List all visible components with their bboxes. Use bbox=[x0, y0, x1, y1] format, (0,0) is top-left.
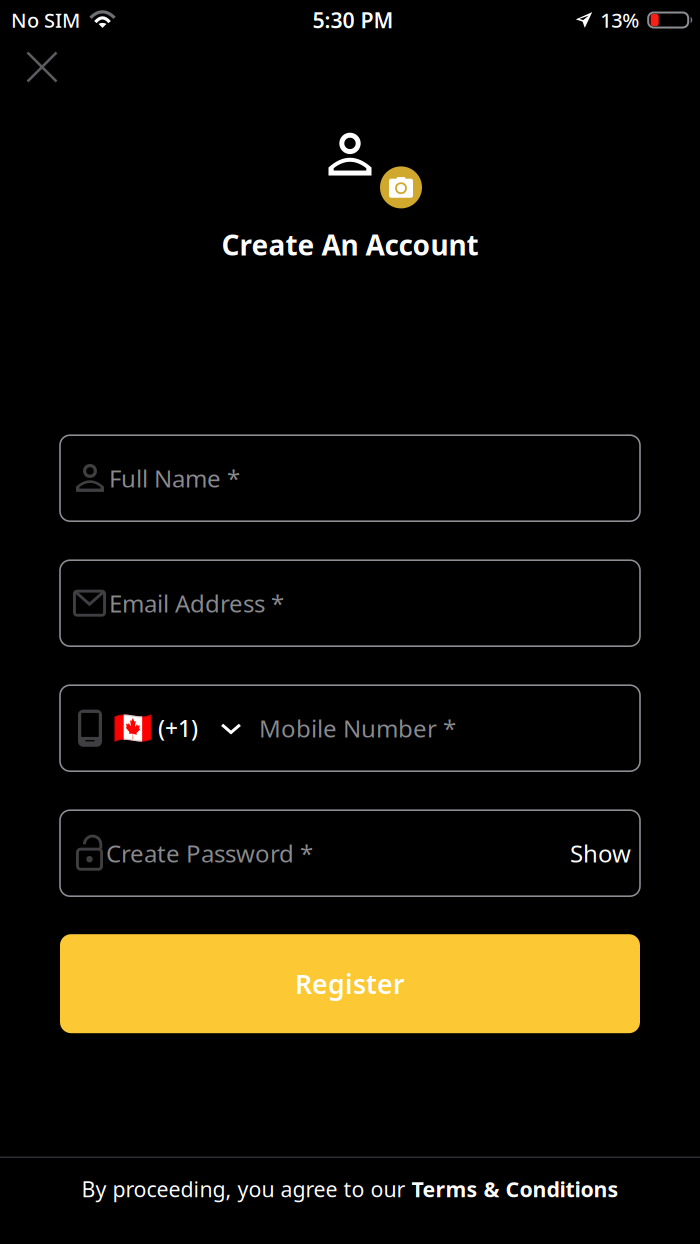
staticText: Mobile Number * bbox=[259, 712, 456, 744]
staticText: Terms & Conditions bbox=[411, 1175, 618, 1203]
staticText: Create Password * bbox=[106, 837, 313, 869]
staticText: 13% bbox=[600, 7, 639, 33]
staticText: Create An Account bbox=[221, 226, 478, 263]
staticText: No SIM bbox=[11, 7, 80, 33]
button[interactable]: Add profile photo bbox=[328, 133, 371, 210]
button[interactable]: Show bbox=[563, 837, 624, 869]
staticText: By proceeding, you agree to our bbox=[81, 1175, 411, 1203]
staticText: Email Address * bbox=[109, 587, 284, 619]
staticText: 5:30 PM bbox=[312, 6, 393, 34]
staticText: 🇨🇦 bbox=[113, 710, 153, 746]
button[interactable]: Close bbox=[13, 40, 71, 94]
staticText: Register bbox=[295, 966, 405, 1001]
button[interactable]: Register bbox=[60, 934, 640, 1033]
staticText: (+1) bbox=[158, 713, 198, 743]
button[interactable]: By proceeding, you agree to our bbox=[0, 1158, 700, 1220]
staticText: Show bbox=[570, 837, 631, 869]
staticText: Full Name * bbox=[109, 462, 240, 494]
